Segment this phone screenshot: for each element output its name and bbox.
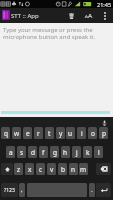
staticText: f <box>42 148 45 157</box>
staticText: r <box>37 129 40 138</box>
button[interactable]: a <box>6 146 15 158</box>
button[interactable]: r <box>34 127 43 139</box>
button[interactable]: j <box>72 146 81 158</box>
button[interactable]: e <box>23 127 32 139</box>
staticText: p <box>102 129 106 138</box>
button[interactable]: z <box>14 163 23 175</box>
staticText: y <box>59 129 63 138</box>
button[interactable]: h <box>61 146 70 158</box>
staticText: t <box>48 129 51 138</box>
staticText: b <box>61 165 65 174</box>
button[interactable]: c <box>36 163 45 175</box>
button[interactable]: Backspace <box>96 163 111 175</box>
button[interactable]: i <box>77 127 86 139</box>
button[interactable]: d <box>28 146 37 158</box>
staticText: i <box>81 129 83 138</box>
button[interactable]: x <box>25 163 34 175</box>
button[interactable]: g <box>50 146 59 158</box>
staticText: 21:45 <box>97 1 112 8</box>
button[interactable]: v <box>47 163 56 175</box>
staticText: n <box>71 165 76 174</box>
staticText: a <box>9 148 13 157</box>
button[interactable]: f <box>39 146 48 158</box>
staticText: j <box>76 148 78 157</box>
button[interactable]: s <box>17 146 26 158</box>
staticText: w <box>14 129 20 138</box>
button[interactable]: Enter <box>96 183 111 197</box>
button[interactable]: More options <box>99 9 110 22</box>
staticText: d <box>31 148 35 157</box>
staticText: z <box>17 165 21 174</box>
button[interactable]: w <box>12 127 21 139</box>
button[interactable]: u <box>66 127 75 139</box>
button[interactable]: , <box>19 183 25 197</box>
button[interactable]: p <box>99 127 108 139</box>
staticText: k <box>86 148 90 157</box>
staticText: x <box>28 165 32 174</box>
staticText: s <box>20 148 24 157</box>
button[interactable]: k <box>83 146 92 158</box>
button[interactable]: Text size <box>81 9 95 22</box>
staticText: o <box>91 129 95 138</box>
staticText: g <box>53 148 57 157</box>
button[interactable]: n <box>69 163 78 175</box>
button[interactable]: Clear text <box>64 9 78 22</box>
staticText: e <box>26 129 30 138</box>
button[interactable]: o <box>88 127 97 139</box>
button[interactable]: l <box>94 146 103 158</box>
button[interactable]: y <box>56 127 65 139</box>
button[interactable]: q <box>1 127 10 139</box>
button[interactable]: ?123 <box>1 183 18 197</box>
staticText: m <box>80 165 87 174</box>
button[interactable]: b <box>58 163 67 175</box>
button[interactable]: Voice input <box>99 119 110 127</box>
button[interactable]: . <box>89 183 95 197</box>
staticText: u <box>68 129 73 138</box>
staticText: Type your message or press the microphon… <box>3 26 96 41</box>
button[interactable]: m <box>79 163 88 175</box>
staticText: STT :: App <box>11 12 39 20</box>
staticText: q <box>4 129 8 138</box>
staticText: l <box>98 148 100 157</box>
staticText: . <box>91 186 93 194</box>
staticText: v <box>50 165 54 174</box>
staticText: , <box>21 186 23 194</box>
button[interactable]: t <box>45 127 54 139</box>
button[interactable]: Shift <box>1 163 13 175</box>
staticText: ?123 <box>4 187 15 194</box>
staticText: h <box>63 148 68 157</box>
staticText: c <box>39 165 43 174</box>
